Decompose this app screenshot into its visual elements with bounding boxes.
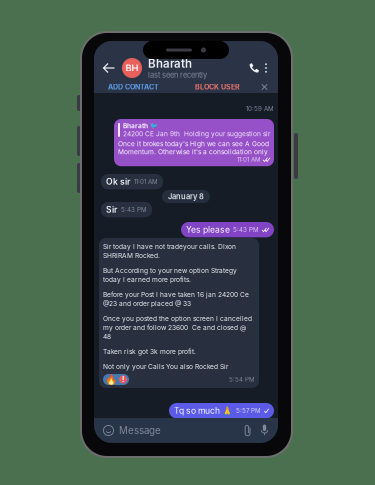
staticText: BLOCK USER: [195, 83, 240, 91]
staticText: Sir: [106, 204, 117, 215]
staticText: January 8: [168, 192, 204, 201]
staticText: 🔥: [105, 374, 117, 385]
button[interactable]: Back: [100, 59, 118, 77]
button[interactable]: Call: [248, 62, 260, 74]
staticText: 48: [103, 332, 111, 340]
button[interactable]: Emoji: [103, 425, 114, 436]
staticText: Message: [119, 425, 161, 436]
button[interactable]: BLOCK USER: [195, 83, 240, 91]
staticText: Taken risk got 3k more profit.: [103, 347, 196, 355]
staticText: @23 and order placed @ 33: [103, 299, 191, 307]
staticText: 5:54 PM: [229, 376, 255, 383]
button[interactable]: Reactions: [103, 374, 129, 385]
staticText: Before your Post I have taken 16 jan 242…: [103, 290, 249, 298]
button[interactable]: Record voice message: [252, 424, 268, 436]
staticText: 5:57 PM: [236, 407, 261, 414]
staticText: Bharath 🐦: [123, 122, 158, 130]
staticText: Once it brokes today's High we can see A…: [118, 140, 269, 148]
staticText: Yes please: [186, 224, 230, 235]
staticText: BH: [125, 62, 138, 74]
staticText: 5:43 PM: [121, 206, 147, 213]
staticText: But According to your new option Strateg…: [103, 266, 237, 274]
staticText: 24200 CE Jan 9th Holding your suggestion…: [123, 130, 270, 138]
staticText: Bharath: [148, 56, 192, 70]
staticText: 5:43 PM: [233, 226, 259, 233]
staticText: Tq so much 🙏: [174, 405, 233, 416]
staticText: 11:01 AM: [237, 156, 261, 163]
button[interactable]: ADD CONTACT: [108, 83, 159, 91]
staticText: ADD CONTACT: [108, 83, 159, 91]
button[interactable]: More options: [260, 61, 272, 75]
staticText: Not only your Calls You also Rocked Sir: [103, 362, 228, 370]
staticText: last seen recently: [148, 70, 207, 79]
staticText: Sir today I have not tradeyour calls. DI…: [103, 242, 236, 250]
staticText: Momentum. Otherwise it's a consolidation…: [118, 148, 268, 156]
staticText: my order and follow 23600 Ce and closed …: [103, 323, 246, 331]
staticText: SHRIRAM Rocked.: [103, 251, 160, 259]
staticText: today I earned more profits.: [103, 275, 191, 283]
staticText: Once you posted the option screen I canc…: [103, 314, 252, 322]
staticText: Ok sir: [106, 176, 130, 187]
button[interactable]: Dismiss: [261, 83, 268, 90]
staticText: !: [122, 375, 124, 384]
staticText: 10:59 AM: [246, 105, 274, 112]
button[interactable]: Attach file: [243, 424, 252, 436]
staticText: 11:01 AM: [134, 178, 158, 185]
